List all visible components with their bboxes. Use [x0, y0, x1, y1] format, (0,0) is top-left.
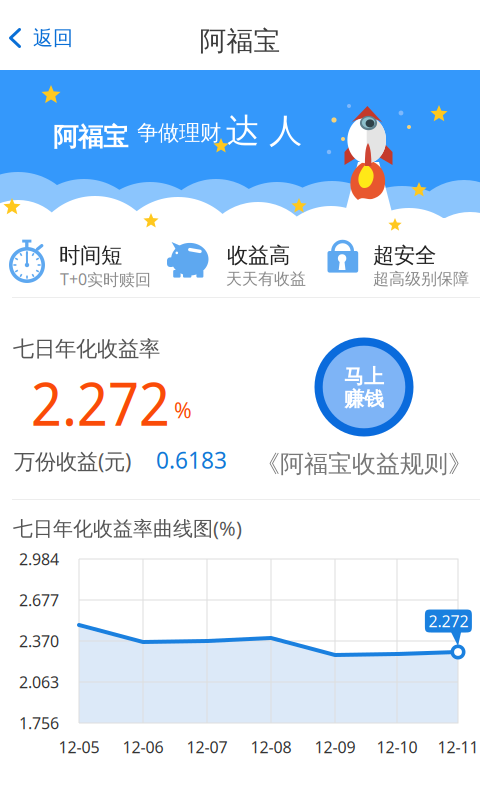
staticText: 2.272 — [428, 610, 468, 632]
staticText: 12-09 — [314, 736, 355, 758]
staticText: 赚钱 — [344, 387, 384, 411]
staticText: % — [174, 396, 192, 424]
staticText: 收益高 — [227, 242, 290, 269]
staticText: T+0实时赎回 — [60, 268, 151, 290]
staticText: 万份收益(元) — [14, 447, 131, 475]
button[interactable]: 《阿福宝收益规则》 — [252, 443, 476, 485]
staticText: 2.370 — [19, 630, 59, 652]
staticText: 0.6183 — [156, 445, 227, 475]
staticText: 阿福宝 — [199, 25, 280, 57]
button[interactable]: 马上 — [314, 337, 414, 437]
staticText: 七日年化收益率 — [13, 336, 160, 362]
staticText: 12-08 — [250, 736, 291, 758]
staticText: 2.272 — [31, 362, 170, 443]
staticText: 争做理财 — [137, 120, 221, 146]
staticText: 超高级别保障 — [373, 269, 469, 289]
staticText: 12-10 — [376, 736, 417, 758]
staticText: 阿福宝 — [53, 121, 128, 152]
staticText: 超安全 — [373, 242, 436, 269]
staticText: 2.984 — [19, 548, 59, 570]
staticText: 12-07 — [186, 736, 227, 758]
staticText: 七日年化收益率曲线图(%) — [13, 515, 242, 541]
staticText: 2.677 — [19, 589, 59, 611]
staticText: 马上 — [344, 364, 384, 389]
staticText: 12-06 — [122, 736, 163, 758]
staticText: 返回 — [33, 26, 73, 50]
staticText: 《阿福宝收益规则》 — [256, 449, 472, 479]
staticText: 1.756 — [19, 712, 59, 734]
staticText: 12-05 — [58, 736, 99, 758]
button[interactable]: 返回 — [0, 10, 89, 66]
staticText: 时间短 — [59, 242, 122, 269]
staticText: 2.063 — [19, 671, 59, 693]
staticText: 天天有收益 — [226, 269, 306, 289]
staticText: 12-11 — [437, 736, 478, 758]
staticText: 达 人 — [226, 110, 302, 151]
